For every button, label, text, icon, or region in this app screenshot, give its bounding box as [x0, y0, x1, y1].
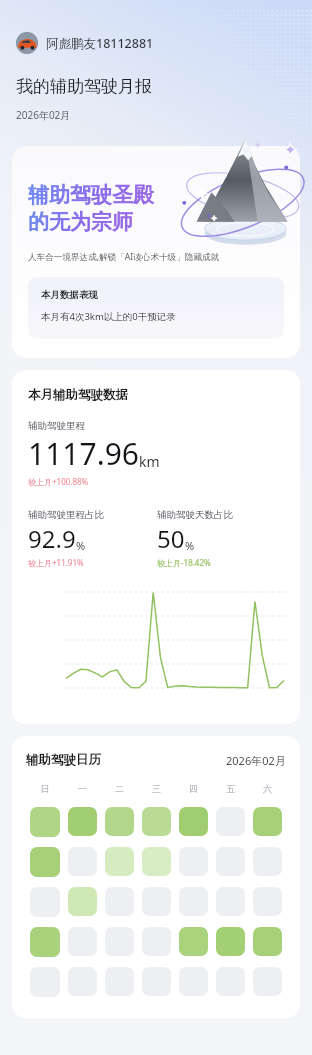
button[interactable] [30, 847, 60, 877]
button[interactable]: 辅助驾驶圣殿 [12, 146, 300, 358]
staticText: 本月有4次3km以上的0干预记录 [41, 310, 176, 323]
button[interactable] [68, 887, 97, 916]
staticText: 较上月+11.91% [28, 557, 84, 568]
button[interactable] [68, 847, 97, 876]
button[interactable] [142, 967, 171, 996]
other: User avatar [16, 32, 38, 54]
button[interactable] [142, 807, 171, 836]
button[interactable] [68, 967, 97, 996]
staticText: 一 [64, 783, 101, 794]
staticText: 人车合一境界达成,解锁「AI读心术十级」隐藏成就 [28, 251, 220, 263]
button[interactable] [216, 807, 245, 836]
button[interactable] [253, 967, 282, 996]
button[interactable] [253, 927, 282, 956]
staticText: 较上月+100.88% [28, 476, 89, 487]
button[interactable] [105, 887, 134, 916]
button[interactable] [30, 887, 60, 917]
staticText: 六 [249, 783, 286, 794]
button[interactable] [105, 927, 134, 956]
staticText: 本月数据表现 [41, 289, 98, 301]
staticText: 本月辅助驾驶数据 [28, 387, 128, 403]
staticText: 四 [175, 783, 212, 794]
button[interactable] [142, 887, 171, 916]
staticText: 我的辅助驾驶月报 [16, 76, 152, 97]
button[interactable] [142, 927, 171, 956]
staticText: 辅助驾驶天数占比 [157, 509, 233, 521]
button[interactable] [105, 967, 134, 996]
button[interactable] [179, 847, 208, 876]
button[interactable] [216, 967, 245, 996]
staticText: 三 [138, 783, 175, 794]
staticText: 阿彪鹏友18112881 [46, 35, 154, 52]
staticText: 日 [26, 783, 64, 794]
button[interactable] [142, 847, 171, 876]
button[interactable] [253, 847, 282, 876]
button[interactable] [216, 927, 245, 956]
button[interactable] [105, 847, 134, 876]
button[interactable] [179, 967, 208, 996]
button[interactable] [30, 927, 60, 957]
staticText: 辅助驾驶日历 [26, 752, 101, 768]
button[interactable] [68, 927, 97, 956]
button[interactable] [30, 807, 60, 837]
button[interactable] [253, 887, 282, 916]
staticText: 50 [157, 522, 185, 555]
staticText: 辅助驾驶里程占比 [28, 509, 104, 521]
button[interactable] [179, 927, 208, 956]
staticText: 五 [212, 783, 249, 794]
staticText: 2026年02月 [226, 753, 286, 768]
button[interactable] [253, 807, 282, 836]
staticText: % [185, 538, 195, 553]
staticText: 2026年02月 [16, 108, 71, 122]
staticText: 较上月-18.42% [157, 557, 211, 568]
staticText: 辅助驾驶里程 [28, 420, 85, 432]
button[interactable] [105, 807, 134, 836]
staticText: 辅助驾驶圣殿 [28, 182, 154, 208]
button[interactable] [30, 967, 60, 997]
staticText: 的无为宗师 [28, 209, 133, 235]
button[interactable] [68, 807, 97, 836]
button[interactable]: User avatar [16, 32, 154, 54]
staticText: 92.9 [28, 522, 76, 555]
staticText: 1117.96 [28, 433, 139, 474]
staticText: 二 [101, 783, 138, 794]
other: Achievement mountain trophy [172, 132, 308, 250]
button[interactable] [216, 847, 245, 876]
button[interactable] [179, 887, 208, 916]
button[interactable] [216, 887, 245, 916]
staticText: % [76, 538, 86, 553]
staticText: km [139, 452, 160, 471]
button[interactable] [179, 807, 208, 836]
